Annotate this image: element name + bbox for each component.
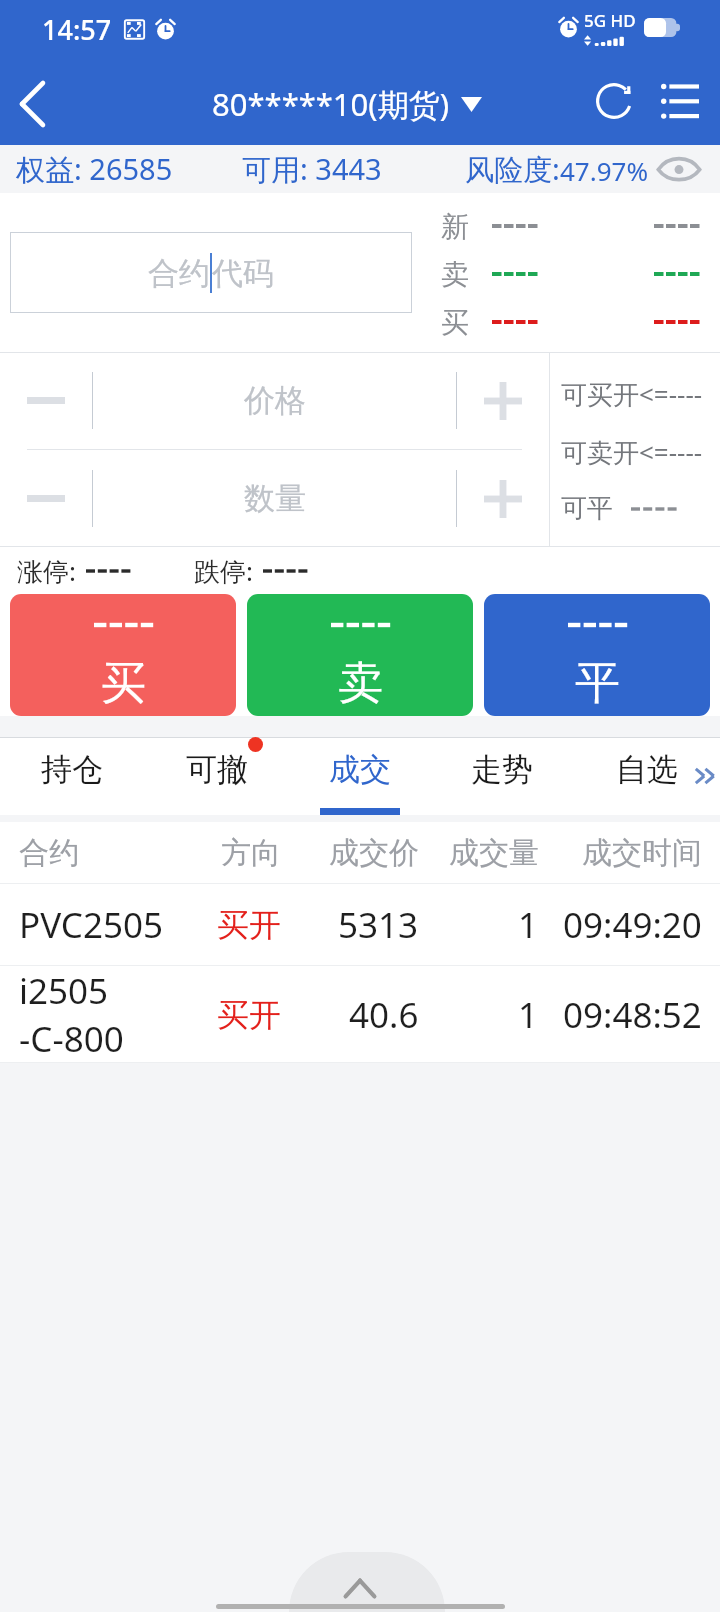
button[interactable]: 卖 <box>247 594 473 716</box>
staticText: 09:48:52 <box>563 991 702 1039</box>
button[interactable]: 80*****10(期货) <box>212 83 482 125</box>
staticText: 平 <box>575 655 620 712</box>
staticText: 方向 <box>221 834 281 872</box>
staticText: 买开 <box>217 995 281 1035</box>
staticText: 可撤 <box>186 750 248 789</box>
staticText: 成交量 <box>449 834 539 872</box>
staticText: 自选 <box>616 750 678 789</box>
button[interactable]: 合约 <box>10 232 412 313</box>
staticText: 代码 <box>212 254 274 293</box>
button[interactable]: Expand panel <box>289 1552 445 1612</box>
button[interactable]: i2505 <box>0 966 720 1063</box>
staticText: 5313 <box>338 901 419 949</box>
button[interactable]: 成交 <box>298 737 422 815</box>
staticText: 卖 <box>338 655 383 712</box>
staticText: 47.97% <box>560 153 649 188</box>
button[interactable]: 数量 <box>93 450 456 547</box>
staticText: 80*****10(期货) <box>212 83 449 125</box>
staticText: 买 <box>101 655 146 712</box>
staticText: 09:49:20 <box>563 901 702 949</box>
staticText: 价格 <box>244 381 306 420</box>
button[interactable]: Increase 价格 <box>457 352 549 449</box>
button[interactable]: 价格 <box>93 352 456 449</box>
staticText: 成交价 <box>329 834 419 872</box>
staticText: 合约 <box>19 834 79 872</box>
staticText: 涨停: <box>17 553 76 589</box>
staticText: 1 <box>518 901 539 949</box>
staticText: 成交时间 <box>582 834 702 872</box>
staticText: 合约 <box>148 254 210 293</box>
button[interactable]: 平 <box>484 594 710 716</box>
staticText: 40.6 <box>349 991 419 1039</box>
button[interactable]: Decrease 价格 <box>0 352 92 449</box>
staticText: 14:57 <box>42 11 112 48</box>
button[interactable]: 买 <box>10 594 236 716</box>
staticText: 新 <box>441 209 469 243</box>
staticText: 走势 <box>471 750 533 789</box>
staticText: 成交 <box>329 750 391 789</box>
button[interactable]: 持仓 <box>10 737 134 815</box>
staticText: 卖 <box>441 257 469 291</box>
staticText: 数量 <box>244 479 306 518</box>
staticText: 持仓 <box>41 750 103 789</box>
button[interactable]: 可撤 <box>155 737 279 815</box>
button[interactable]: More tabs <box>690 737 720 815</box>
button[interactable]: Decrease 数量 <box>0 450 92 547</box>
button[interactable]: Menu <box>650 62 712 145</box>
button[interactable]: 走势 <box>440 737 564 815</box>
staticText: 5G HD <box>584 9 636 32</box>
button[interactable]: Refresh <box>582 62 646 145</box>
staticText: 1 <box>518 991 539 1039</box>
staticText: i2505 <box>19 967 109 1015</box>
button[interactable]: PVC2505 <box>0 884 720 966</box>
staticText: 买 <box>441 305 469 339</box>
staticText: 可买开<=---- <box>561 376 703 412</box>
staticText: 权益: 26585 <box>16 149 173 189</box>
staticText: 可平 <box>561 492 613 525</box>
button[interactable]: Increase 数量 <box>457 450 549 547</box>
staticText: 可用: 3443 <box>242 149 382 189</box>
staticText: 风险度: <box>465 149 560 189</box>
button[interactable]: 自选 <box>585 737 709 815</box>
staticText: 可卖开<=---- <box>561 434 703 470</box>
button[interactable]: Back <box>0 62 76 145</box>
button[interactable]: Toggle visibility <box>645 145 713 193</box>
staticText: 买开 <box>217 905 281 945</box>
staticText: PVC2505 <box>19 901 164 949</box>
staticText: 跌停: <box>194 553 253 589</box>
staticText: -C-800 <box>19 1015 124 1063</box>
